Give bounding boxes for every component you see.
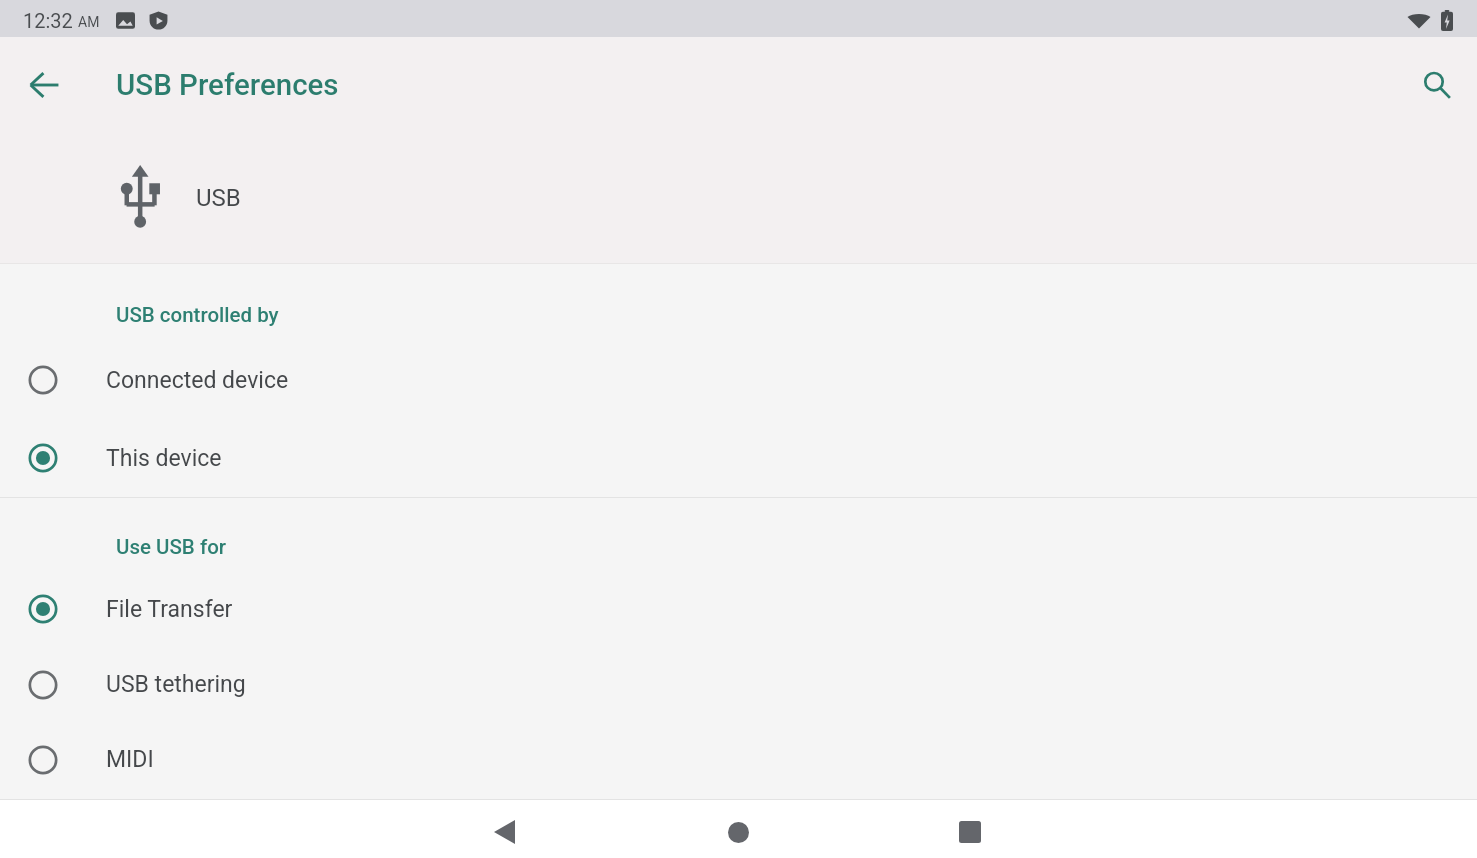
staticText: USB tethering (106, 671, 246, 698)
staticText: MIDI (106, 746, 154, 773)
staticText: Connected device (106, 367, 289, 394)
button[interactable]: File Transfer (0, 571, 1477, 647)
staticText: Use USB for (116, 535, 227, 559)
staticText: 12:32 (23, 9, 73, 32)
button[interactable]: Search (1407, 55, 1467, 115)
staticText: USB Preferences (116, 68, 339, 103)
staticText: USB controlled by (116, 303, 279, 327)
button[interactable]: USB tethering (0, 647, 1477, 722)
button[interactable]: Navigate up (15, 55, 75, 115)
staticText: File Transfer (106, 596, 233, 623)
button[interactable]: Back (386, 803, 622, 858)
button[interactable]: MIDI (0, 722, 1477, 797)
button[interactable]: Recent apps (852, 803, 1088, 858)
button[interactable]: This device (0, 419, 1477, 497)
staticText: This device (106, 445, 222, 472)
staticText: AM (78, 14, 100, 30)
staticText: USB (196, 184, 241, 212)
button[interactable]: Home (620, 803, 856, 858)
button[interactable]: Connected device (0, 341, 1477, 419)
